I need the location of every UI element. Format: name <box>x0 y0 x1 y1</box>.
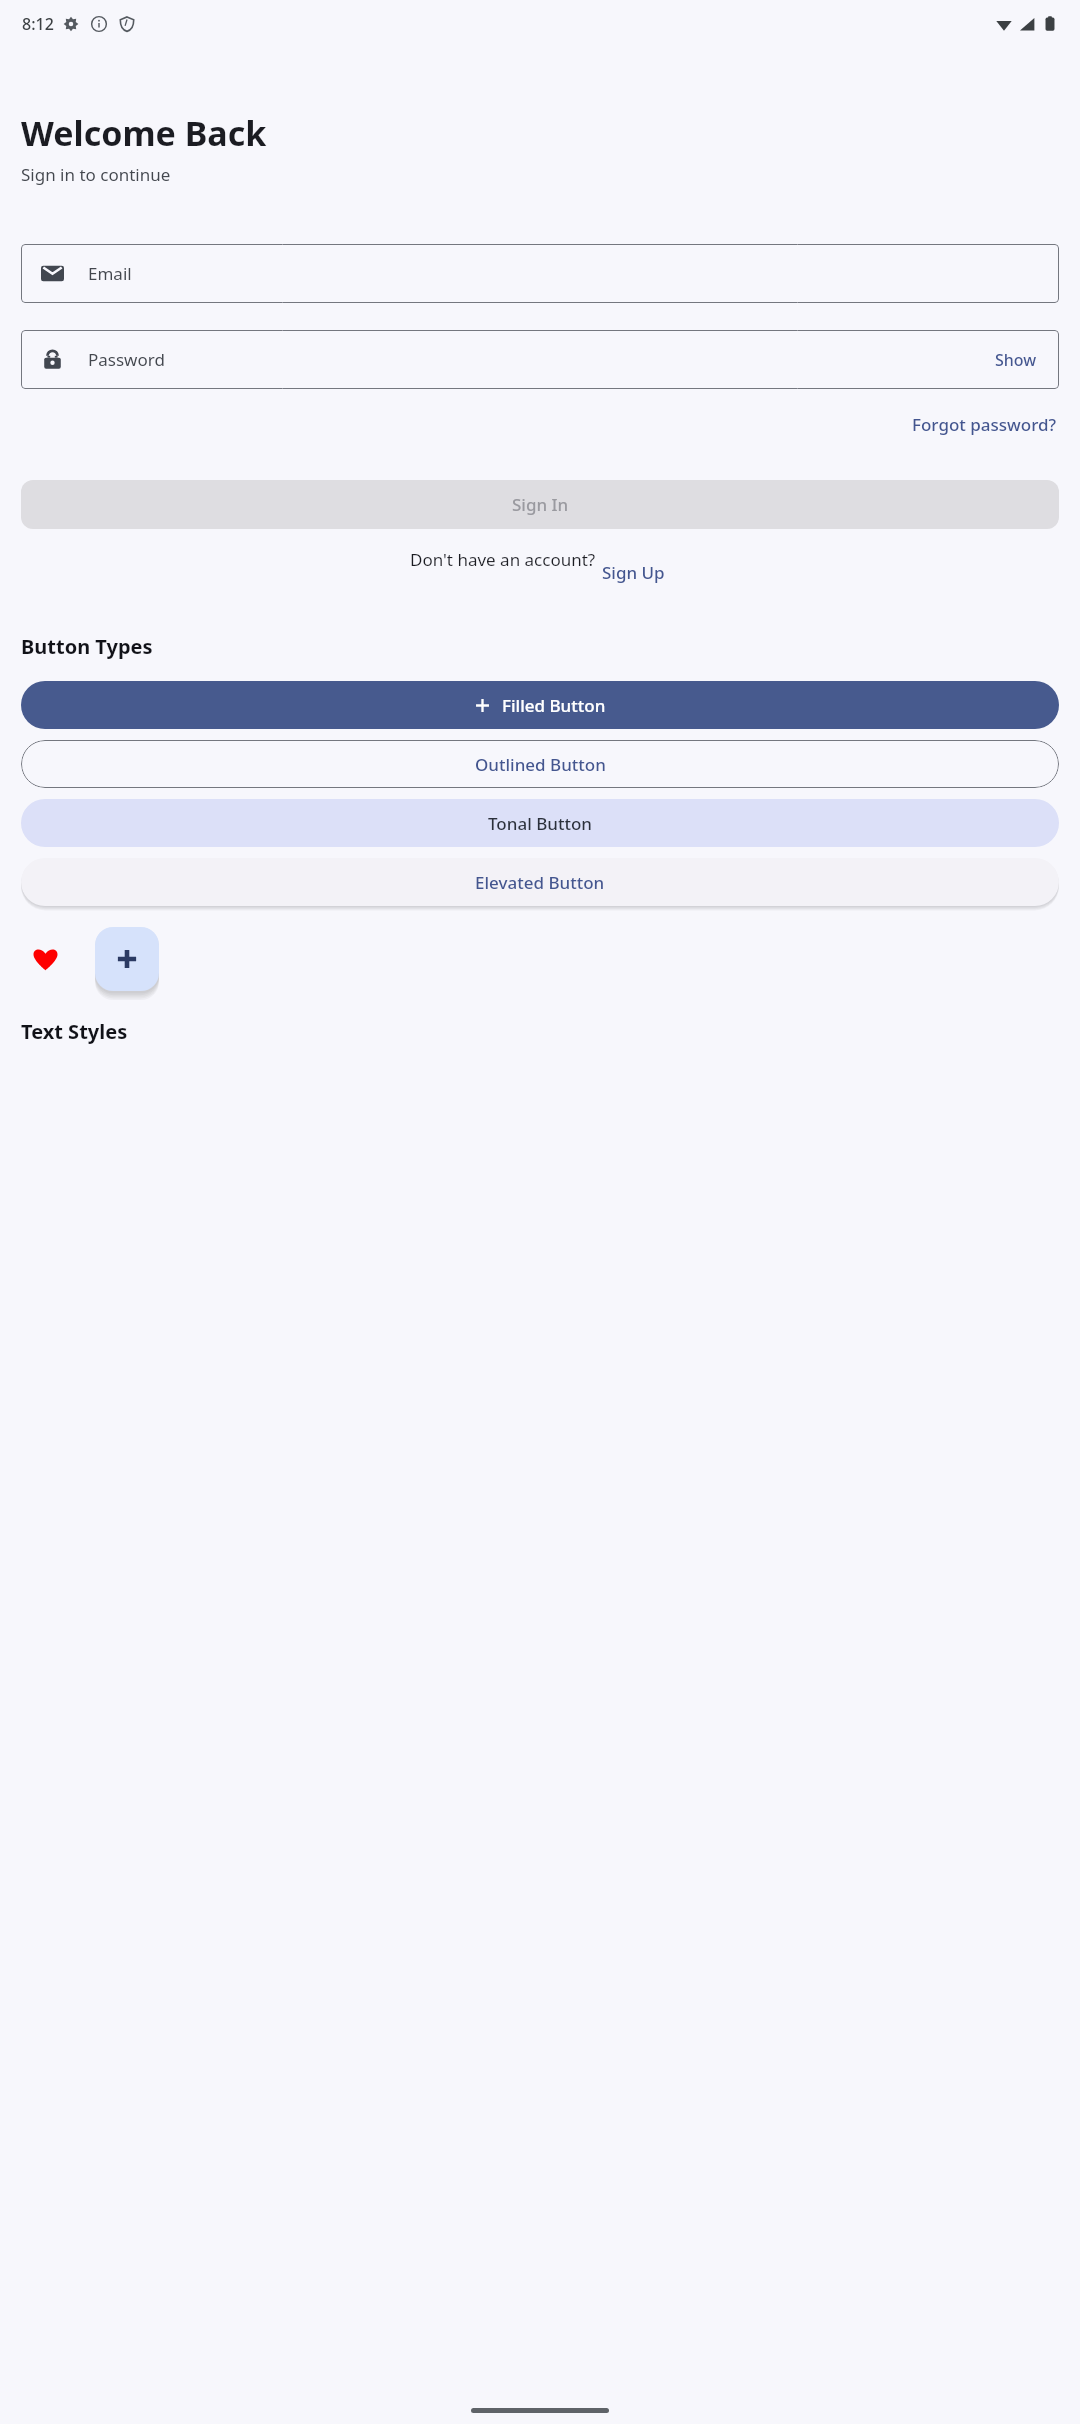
staticText: 8:12 <box>22 13 54 35</box>
button[interactable]: Show <box>991 346 1041 374</box>
button[interactable]: Tonal Button <box>21 799 1059 847</box>
staticText: Email <box>88 262 132 285</box>
staticText: Text Styles <box>21 1018 128 1045</box>
staticText: Sign In <box>512 493 569 516</box>
staticText: Filled Button <box>502 694 606 717</box>
staticText: Button Types <box>21 633 153 660</box>
button[interactable]: Password <box>21 330 1059 389</box>
staticText: Welcome Back <box>21 110 267 156</box>
staticText: Outlined Button <box>475 753 606 776</box>
button[interactable]: Email <box>21 244 1059 303</box>
staticText: Tonal Button <box>488 812 592 835</box>
staticText: Password <box>88 348 165 371</box>
button[interactable]: Forgot password? <box>910 411 1059 438</box>
button[interactable]: Sign In <box>21 480 1059 529</box>
button[interactable]: Filled Button <box>21 681 1059 729</box>
button[interactable]: Outlined Button <box>21 740 1059 788</box>
button[interactable]: Sign Up <box>596 561 671 584</box>
button[interactable]: Elevated Button <box>21 858 1059 906</box>
button[interactable]: Add <box>95 927 159 991</box>
staticText: Show <box>995 349 1037 371</box>
staticText: Sign Up <box>602 561 665 584</box>
staticText: Sign in to continue <box>21 163 171 186</box>
staticText: Forgot password? <box>912 413 1057 436</box>
staticText: Elevated Button <box>475 871 605 894</box>
button[interactable]: Favorite <box>21 935 69 983</box>
staticText: Don't have an account? <box>410 548 596 571</box>
